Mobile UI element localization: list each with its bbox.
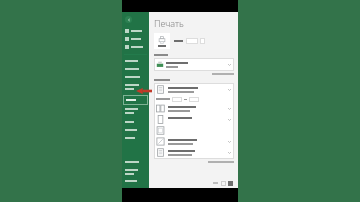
button[interactable]: Назад xyxy=(125,16,132,23)
staticText: Печать xyxy=(154,17,184,29)
button[interactable] xyxy=(122,158,149,166)
button[interactable] xyxy=(122,134,149,142)
button[interactable]: Печать xyxy=(154,33,170,49)
button[interactable] xyxy=(154,84,234,95)
button[interactable] xyxy=(154,114,234,125)
button[interactable] xyxy=(154,58,234,71)
button[interactable] xyxy=(154,125,234,136)
button[interactable] xyxy=(122,118,149,126)
button[interactable] xyxy=(154,136,234,147)
button[interactable] xyxy=(122,27,149,35)
button[interactable] xyxy=(122,105,149,116)
button[interactable] xyxy=(154,147,234,158)
button[interactable] xyxy=(122,65,149,73)
button[interactable] xyxy=(122,43,149,51)
button[interactable] xyxy=(122,35,149,43)
button[interactable]: Число копий xyxy=(200,38,205,44)
button[interactable] xyxy=(122,166,149,177)
button[interactable] xyxy=(122,81,149,92)
button[interactable] xyxy=(123,95,148,105)
button[interactable]: По размеру страницы xyxy=(221,181,226,186)
button[interactable] xyxy=(122,177,149,185)
button[interactable] xyxy=(186,38,198,44)
button[interactable] xyxy=(154,95,234,103)
button[interactable] xyxy=(122,73,149,81)
button[interactable] xyxy=(154,103,234,114)
button[interactable] xyxy=(122,57,149,65)
button[interactable] xyxy=(122,126,149,134)
